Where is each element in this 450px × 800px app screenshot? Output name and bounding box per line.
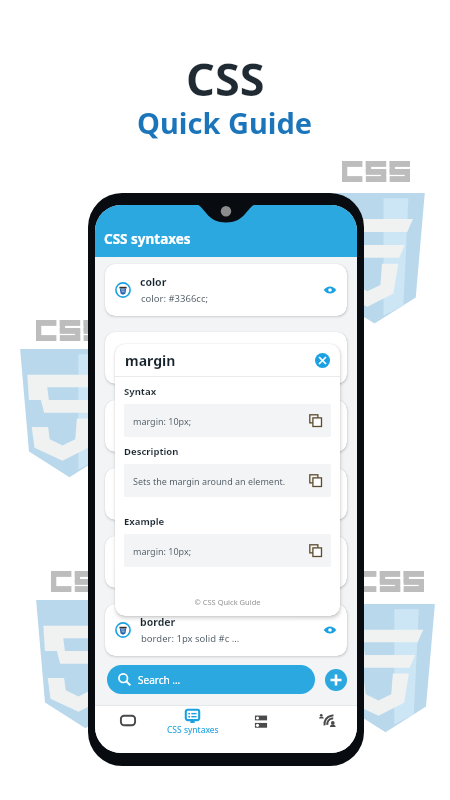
staticText: CSS (186, 48, 265, 109)
button[interactable]: font-size (105, 468, 347, 520)
button[interactable]: CSS syntaxes (160, 706, 225, 753)
button[interactable]: CSS syntaxes (95, 205, 357, 257)
button[interactable]: Copy (309, 544, 322, 557)
button[interactable]: Close (315, 353, 330, 368)
staticText: Description (124, 445, 179, 458)
button[interactable]: Display (95, 706, 160, 753)
staticText: Search ... (138, 673, 181, 687)
staticText: Syntax (124, 385, 157, 398)
button[interactable]: margin (105, 332, 347, 384)
button[interactable]: color (105, 264, 347, 316)
button[interactable]: View (323, 487, 337, 501)
staticText: width: 100px; (141, 564, 201, 577)
staticText: color (140, 275, 167, 289)
button[interactable]: View (323, 283, 337, 297)
staticText: border: 1px solid #c ... (141, 632, 240, 645)
button[interactable]: width (105, 536, 347, 588)
staticText: border (140, 615, 176, 629)
staticText: margin: 10px; (141, 360, 203, 373)
button[interactable]: border (105, 604, 347, 656)
button[interactable]: Share (291, 706, 357, 753)
button[interactable]: View (323, 555, 337, 569)
staticText: padding (140, 411, 183, 425)
staticText: CSS syntaxes (104, 230, 191, 248)
staticText: font-size (140, 479, 186, 493)
staticText: CSS syntaxes (167, 724, 219, 736)
button[interactable]: Copy (309, 474, 322, 487)
staticText: © CSS Quick Guide (124, 597, 331, 607)
staticText: Quick Guide (137, 103, 313, 142)
button[interactable]: Search ... (107, 665, 315, 694)
staticText: font-size: 12px; (141, 496, 209, 509)
button[interactable]: padding (105, 400, 347, 452)
button[interactable]: Copy (309, 414, 322, 427)
staticText: padding: 10px; (141, 428, 208, 441)
staticText: Sets the margin around an element. (133, 475, 309, 487)
button[interactable]: Add (325, 669, 347, 691)
staticText: margin (140, 343, 178, 357)
staticText: color: #3366cc; (141, 292, 208, 305)
staticText: margin: 10px; (133, 545, 309, 557)
staticText: margin: 10px; (133, 415, 309, 427)
button[interactable]: View (323, 623, 337, 637)
button[interactable]: View (323, 419, 337, 433)
button[interactable]: View (323, 351, 337, 365)
staticText: width (140, 547, 171, 561)
staticText: margin (125, 351, 315, 370)
button[interactable]: Storage (225, 706, 291, 753)
staticText: Example (124, 515, 165, 528)
